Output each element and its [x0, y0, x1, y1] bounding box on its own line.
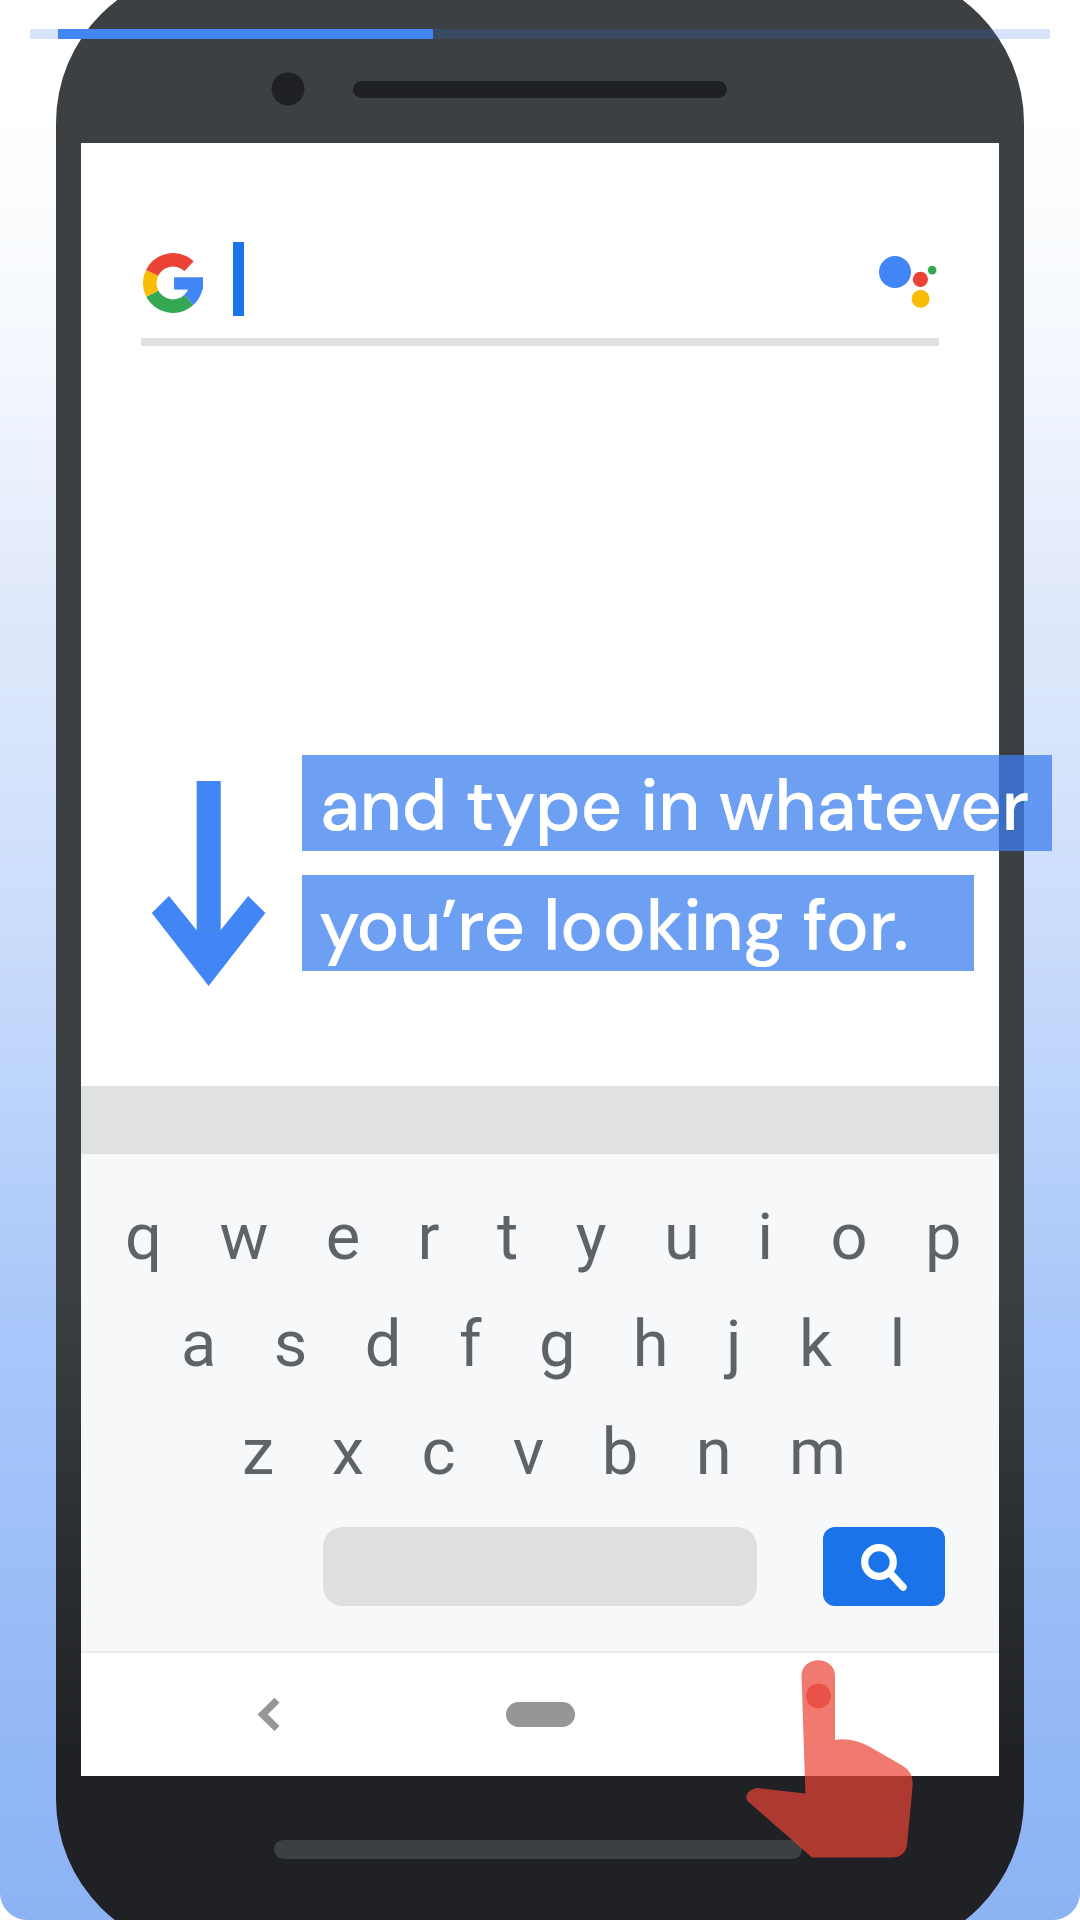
- button[interactable]: and type in whatever: [302, 755, 1052, 851]
- staticText: a s d f g h j k l: [181, 1306, 926, 1382]
- staticText: q w e r t y u i o p: [125, 1199, 983, 1275]
- staticText: and type in whatever: [320, 759, 1029, 852]
- button[interactable]: you’re looking for.: [302, 875, 974, 971]
- staticText: you’re looking for.: [319, 879, 909, 972]
- staticText: z x c v b n m: [242, 1414, 867, 1490]
